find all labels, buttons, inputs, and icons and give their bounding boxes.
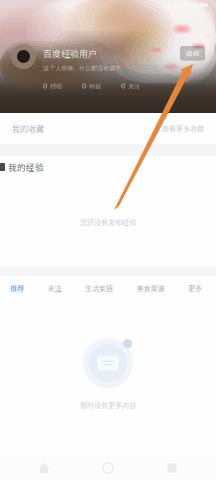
staticText: 我的收藏 [12,123,44,134]
staticText: 0 [121,82,125,90]
staticText: 0 [43,82,47,90]
button[interactable]: 关注 [47,280,61,296]
staticText: 生活家居 [85,283,113,293]
staticText: 我的经验 [8,161,44,173]
button[interactable]: 推荐 [10,280,24,296]
button[interactable]: 我的收藏 [0,113,216,144]
staticText: 更多 [188,283,202,293]
staticText: 关注 [47,283,61,293]
staticText: 这个人很懒，什么都没有留下 [43,64,121,73]
button[interactable]: 编辑 [180,46,205,61]
staticText: 经验 [50,82,62,90]
staticText: 关注 [128,82,140,90]
staticText: 0 [82,82,86,90]
staticText: 查看更多收藏 [162,123,204,133]
staticText: 编辑 [185,48,199,58]
staticText: 美食菜谱 [136,283,164,293]
staticText: 暂时没有更多内容 [80,400,136,410]
staticText: 推荐 [10,283,24,293]
staticText: 您还没有发布经验 [80,217,136,227]
button[interactable]: 更多 [188,280,202,296]
staticText: 百度经验用户 [43,47,97,60]
staticText: 粉丝 [89,82,101,90]
button[interactable]: 我的 [152,456,192,480]
button[interactable]: 生活家居 [85,280,113,296]
button[interactable]: 美食菜谱 [136,280,164,296]
button[interactable]: 首页 [24,456,64,480]
